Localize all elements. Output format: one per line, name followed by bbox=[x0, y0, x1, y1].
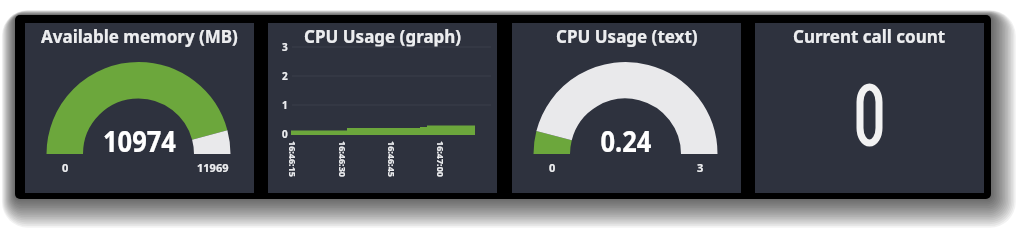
button[interactable]: CPU Usage (text) bbox=[512, 23, 741, 193]
staticText: Current call count bbox=[793, 25, 946, 48]
staticText: 0 bbox=[282, 127, 288, 141]
staticText: CPU Usage (graph) bbox=[304, 25, 462, 48]
staticText: 2 bbox=[282, 69, 288, 83]
staticText: 3 bbox=[282, 40, 288, 54]
staticText: 0.24 bbox=[600, 121, 651, 159]
button[interactable]: Current call count bbox=[755, 23, 984, 193]
staticText: 0 bbox=[549, 160, 556, 175]
staticText: 10974 bbox=[103, 121, 176, 159]
button[interactable]: Available memory (MB) bbox=[25, 23, 254, 193]
staticText: 11969 bbox=[197, 160, 229, 175]
staticText: 16:46:30 bbox=[337, 141, 349, 177]
staticText: 3 bbox=[697, 160, 704, 175]
staticText: 16:47:00 bbox=[435, 141, 447, 177]
staticText: CPU Usage (text) bbox=[556, 25, 698, 48]
staticText: 16:46:45 bbox=[386, 141, 398, 177]
staticText: Available memory (MB) bbox=[41, 25, 238, 48]
staticText: 1 bbox=[282, 98, 288, 112]
staticText: 0 bbox=[62, 160, 69, 175]
staticText: 16:46:15 bbox=[287, 141, 299, 177]
button[interactable]: CPU Usage (graph) bbox=[268, 23, 497, 193]
